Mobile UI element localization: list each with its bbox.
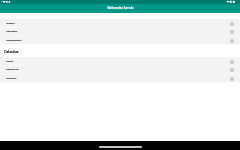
other: Open Integrals	[230, 77, 234, 81]
staticText: Limits	[6, 60, 14, 63]
staticText: Integrals	[6, 77, 17, 80]
other: Open Trigonometry	[230, 39, 234, 43]
button[interactable]: Derivatives	[0, 65, 240, 74]
other: Open Limits	[230, 60, 234, 64]
staticText: Trigonometry	[6, 39, 22, 42]
staticText: 7:04	[1, 0, 6, 3]
button[interactable]: Integrals	[0, 74, 240, 83]
staticText: Geometry	[6, 30, 18, 33]
staticText: Calculus	[4, 49, 19, 54]
other: Open Algebra	[230, 22, 234, 26]
staticText: Derivatives	[6, 68, 19, 71]
staticText: Trigonometry	[6, 39, 22, 42]
staticText: Algebra	[6, 22, 15, 25]
staticText: Limits	[6, 60, 14, 63]
staticText: Integrals	[6, 77, 17, 80]
staticText: Geometry	[6, 30, 18, 33]
staticText: Derivatives	[6, 68, 19, 71]
staticText: Mathematics Formula	[107, 6, 134, 9]
other: Open Geometry	[230, 30, 234, 34]
other: Open Derivatives	[230, 68, 234, 72]
staticText: Algebra	[6, 22, 15, 25]
button[interactable]: Trigonometry	[0, 36, 240, 45]
button[interactable]: Geometry	[0, 27, 240, 36]
button[interactable]: Limits	[0, 57, 240, 66]
staticText: Calculus	[4, 49, 19, 54]
button[interactable]: Algebra	[0, 19, 240, 28]
